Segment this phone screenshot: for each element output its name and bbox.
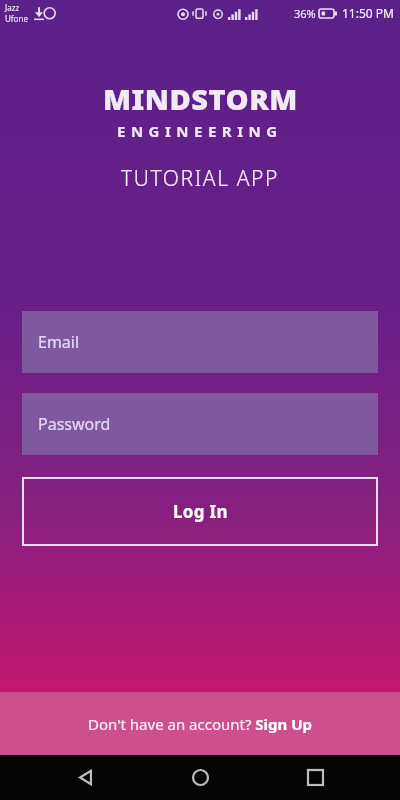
- button[interactable]: Password: [22, 393, 378, 455]
- button[interactable]: Home: [170, 755, 230, 800]
- staticText: ENGINEERING: [117, 121, 283, 141]
- staticText: Jazz: [5, 2, 20, 13]
- staticText: TUTORIAL APP: [121, 164, 279, 193]
- staticText: Ufone: [5, 13, 28, 24]
- button[interactable]: Back: [55, 755, 115, 800]
- staticText: Don't have an account? Sign Up: [88, 714, 313, 734]
- staticText: MINDSTORM: [103, 79, 298, 118]
- button[interactable]: Email: [22, 311, 378, 373]
- staticText: 11:50 PM: [342, 5, 394, 21]
- staticText: Password: [38, 413, 111, 435]
- button[interactable]: Don't have an account? Sign Up: [0, 692, 400, 755]
- staticText: Email: [38, 331, 80, 353]
- button[interactable]: Log In: [22, 477, 378, 546]
- staticText: Log In: [173, 500, 228, 523]
- staticText: 36%: [294, 6, 316, 21]
- button[interactable]: Recent apps: [285, 755, 345, 800]
